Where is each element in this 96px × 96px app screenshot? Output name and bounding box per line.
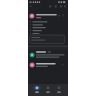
button[interactable]: Message header [28, 10, 68, 20]
button[interactable]: Delete [54, 4, 60, 10]
button[interactable]: Meet [42, 84, 54, 96]
button[interactable]: Conversation 1 [28, 49, 68, 60]
button[interactable]: Mail [31, 84, 43, 96]
button[interactable]: More options [59, 4, 65, 10]
button[interactable]: Back [28, 4, 34, 10]
button[interactable]: Archive [48, 4, 54, 10]
button[interactable]: Conversation 2 [28, 61, 68, 70]
button[interactable]: Chat [53, 84, 65, 96]
